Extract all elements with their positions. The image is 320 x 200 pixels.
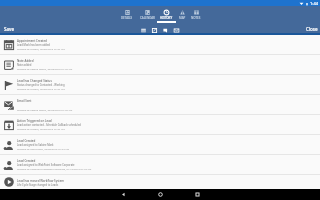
staticText: Lead Created (17, 159, 36, 163)
staticText: Lead Created (17, 139, 36, 143)
button[interactable]: list (141, 28, 146, 33)
button[interactable]: HISTORY (157, 6, 176, 23)
button[interactable]: CALENDAR (137, 6, 157, 23)
button[interactable]: chat (163, 28, 168, 33)
button[interactable]: Lead has Changed Status (0, 75, 320, 95)
button[interactable]: mail (174, 28, 179, 33)
staticText: Lead assigned to WebPoint Software Corpo… (17, 163, 75, 167)
button[interactable]: Recents (193, 190, 202, 199)
staticText: Created by system, 30/06/2016 01:44 AM (17, 127, 65, 130)
button[interactable]: NOTES (189, 6, 202, 23)
staticText: Close (306, 26, 318, 32)
button[interactable]: edit (152, 28, 157, 33)
staticText: Lead has Changed Status (17, 79, 52, 83)
staticText: Lead Mark has been added (17, 43, 50, 47)
staticText: Lead assigned to Sabine Mark (17, 143, 54, 147)
staticText: Life Cycle Stage changed to Leads (17, 183, 59, 187)
staticText: Created by system, 30/06/2016 01:44 AM (17, 47, 65, 50)
button[interactable]: Back (119, 190, 128, 199)
button[interactable]: Lead Created (0, 135, 320, 155)
staticText: 1:44 (310, 1, 318, 6)
staticText: Lead has moved Workflow System (17, 179, 65, 183)
button[interactable]: Lead has moved Workflow System (0, 175, 320, 189)
staticText: Status changed to Contacted - Working (17, 83, 65, 87)
staticText: Created by system, 30/06/2016 01:44 AM (17, 87, 65, 90)
button[interactable]: Lead Created (0, 155, 320, 175)
staticText: MAP (179, 16, 186, 20)
staticText: Save (4, 26, 15, 32)
staticText: Created by Sabine Marks, 30/06/2016 01:4… (17, 108, 73, 111)
staticText: DETAILS (121, 16, 133, 20)
staticText: CALENDAR (140, 16, 155, 20)
staticText: Action Triggered on Lead (17, 119, 52, 123)
staticText: Appointment Created (17, 39, 47, 43)
staticText: Lead action contacted - Schedule Callbac… (17, 123, 81, 127)
staticText: NOTES (191, 16, 201, 20)
staticText: Created by WebPoint Software Corporate, … (17, 167, 92, 170)
staticText: Email Sent (17, 99, 32, 103)
button[interactable]: Close (303, 24, 320, 34)
button[interactable]: Save (0, 24, 18, 34)
staticText: Created by auto-robot, 30/06/2016 01:44 … (17, 147, 70, 150)
staticText: Note added (17, 63, 32, 67)
staticText: HISTORY (160, 16, 173, 20)
button[interactable]: Action Triggered on Lead (0, 115, 320, 135)
button[interactable]: MAP (176, 6, 189, 23)
staticText: Note Added (17, 59, 34, 63)
button[interactable]: Note Added (0, 55, 320, 75)
staticText: Created by Sabine Marks, 30/06/2016 01:4… (17, 67, 73, 70)
button[interactable]: DETAILS (117, 6, 137, 23)
button[interactable]: Home (156, 190, 165, 199)
button[interactable]: Email Sent (0, 95, 320, 115)
button[interactable]: Appointment Created (0, 35, 320, 55)
